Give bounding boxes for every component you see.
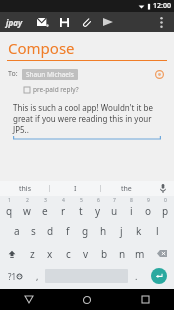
button[interactable]: Backspace <box>149 242 174 265</box>
staticText: a <box>14 224 20 238</box>
button[interactable]: j <box>112 219 130 242</box>
button[interactable]: , <box>29 265 45 287</box>
staticText: d <box>47 224 54 238</box>
button[interactable]: Shift <box>0 242 24 265</box>
staticText: . <box>135 270 138 282</box>
staticText: the <box>121 184 132 194</box>
staticText: 3 <box>44 197 47 204</box>
button[interactable]: 9 <box>140 196 157 219</box>
staticText: k <box>136 224 142 238</box>
button[interactable]: z <box>24 242 41 265</box>
staticText: Compose <box>8 38 75 58</box>
button[interactable]: d <box>42 219 59 242</box>
staticText: r <box>61 204 66 218</box>
button[interactable]: 2 <box>18 196 36 219</box>
staticText: n <box>119 247 126 261</box>
staticText: v <box>83 247 89 261</box>
staticText: c <box>66 247 71 261</box>
button[interactable]: b <box>95 242 113 265</box>
staticText: 5 <box>80 197 83 204</box>
button[interactable]: I <box>50 181 101 196</box>
staticText: o <box>145 204 152 218</box>
button[interactable]: More options <box>152 13 170 31</box>
button[interactable]: 5 <box>72 196 89 219</box>
button[interactable]: . <box>128 265 144 287</box>
staticText: 12:00 <box>153 1 171 11</box>
staticText: y <box>95 204 101 218</box>
button[interactable]: Back <box>0 289 58 310</box>
button[interactable]: Save draft <box>55 13 73 31</box>
button[interactable]: 4 <box>54 196 72 219</box>
button[interactable]: 0 <box>157 196 174 219</box>
staticText: u <box>111 204 118 218</box>
staticText: To: <box>8 69 18 79</box>
staticText: p <box>162 204 169 218</box>
staticText: This is such a cool app! Wouldn't it be … <box>13 102 161 135</box>
staticText: l <box>156 224 159 238</box>
staticText: 0 <box>164 197 167 204</box>
button[interactable]: l <box>148 219 166 242</box>
button[interactable]: this <box>0 181 50 196</box>
staticText: x <box>47 247 53 261</box>
staticText: j <box>120 224 123 238</box>
staticText: 4 <box>62 197 65 204</box>
button[interactable]: Attach <box>77 13 95 31</box>
button[interactable]: k <box>130 219 148 242</box>
staticText: 9 <box>147 197 150 204</box>
button[interactable]: Home <box>58 289 116 310</box>
button[interactable]: c <box>59 242 77 265</box>
staticText: f <box>66 224 70 238</box>
button[interactable]: m <box>131 242 149 265</box>
button[interactable]: 7 <box>106 196 123 219</box>
button[interactable]: JPay home <box>4 17 25 28</box>
staticText: w <box>23 204 31 218</box>
button[interactable]: Mail <box>33 13 51 31</box>
button[interactable]: Enter <box>151 268 167 284</box>
staticText: q <box>6 204 13 218</box>
button[interactable]: g <box>76 219 94 242</box>
button[interactable]: 6 <box>89 196 106 219</box>
staticText: I <box>74 184 77 194</box>
staticText: ?1 <box>8 271 17 282</box>
staticText: g <box>82 224 89 238</box>
staticText: this <box>19 184 32 194</box>
button[interactable]: Add contact <box>152 67 166 81</box>
staticText: h <box>100 224 107 238</box>
button[interactable]: Recent apps <box>116 289 174 310</box>
button[interactable]: v <box>77 242 95 265</box>
staticText: jpay <box>6 17 23 28</box>
button[interactable]: Voice input <box>152 181 174 196</box>
staticText: 8 <box>130 197 133 204</box>
staticText: 2 <box>26 197 29 204</box>
button[interactable]: s <box>25 219 42 242</box>
button[interactable]: x <box>41 242 59 265</box>
button[interactable]: n <box>113 242 131 265</box>
staticText: e <box>42 204 48 218</box>
staticText: z <box>30 247 35 261</box>
button[interactable]: pre-paid reply? <box>24 85 174 94</box>
button[interactable]: 8 <box>123 196 140 219</box>
staticText: pre-paid reply? <box>33 85 79 94</box>
staticText: 7 <box>113 197 116 204</box>
staticText: , <box>36 270 39 282</box>
staticText: Shaun Michaels <box>26 70 74 79</box>
button[interactable]: ?1 <box>0 265 29 287</box>
staticText: b <box>101 247 108 261</box>
button[interactable]: a <box>8 219 25 242</box>
button[interactable]: f <box>59 219 76 242</box>
button[interactable]: 3 <box>36 196 54 219</box>
staticText: 6 <box>97 197 100 204</box>
button[interactable]: the <box>101 181 152 196</box>
button[interactable]: Send <box>99 13 117 31</box>
staticText: m <box>135 247 145 261</box>
staticText: 1 <box>8 197 11 204</box>
button[interactable]: 1 <box>0 196 18 219</box>
staticText: s <box>31 224 36 238</box>
staticText: t <box>79 204 83 218</box>
button[interactable]: Shaun Michaels <box>22 69 78 80</box>
staticText: i <box>130 204 133 218</box>
button[interactable]: h <box>94 219 112 242</box>
